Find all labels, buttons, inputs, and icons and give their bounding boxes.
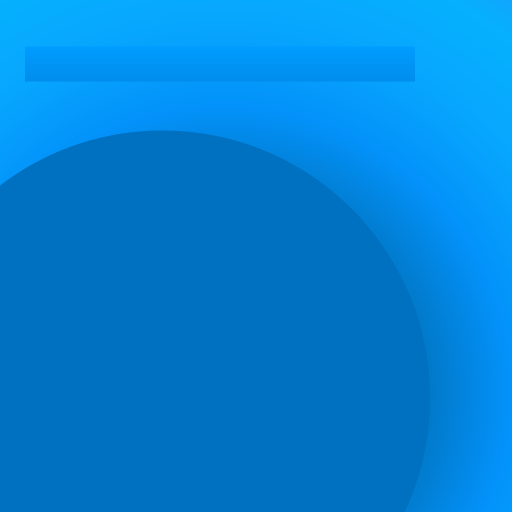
button[interactable]: Title xyxy=(25,46,415,81)
button[interactable]: Open xyxy=(0,130,430,512)
